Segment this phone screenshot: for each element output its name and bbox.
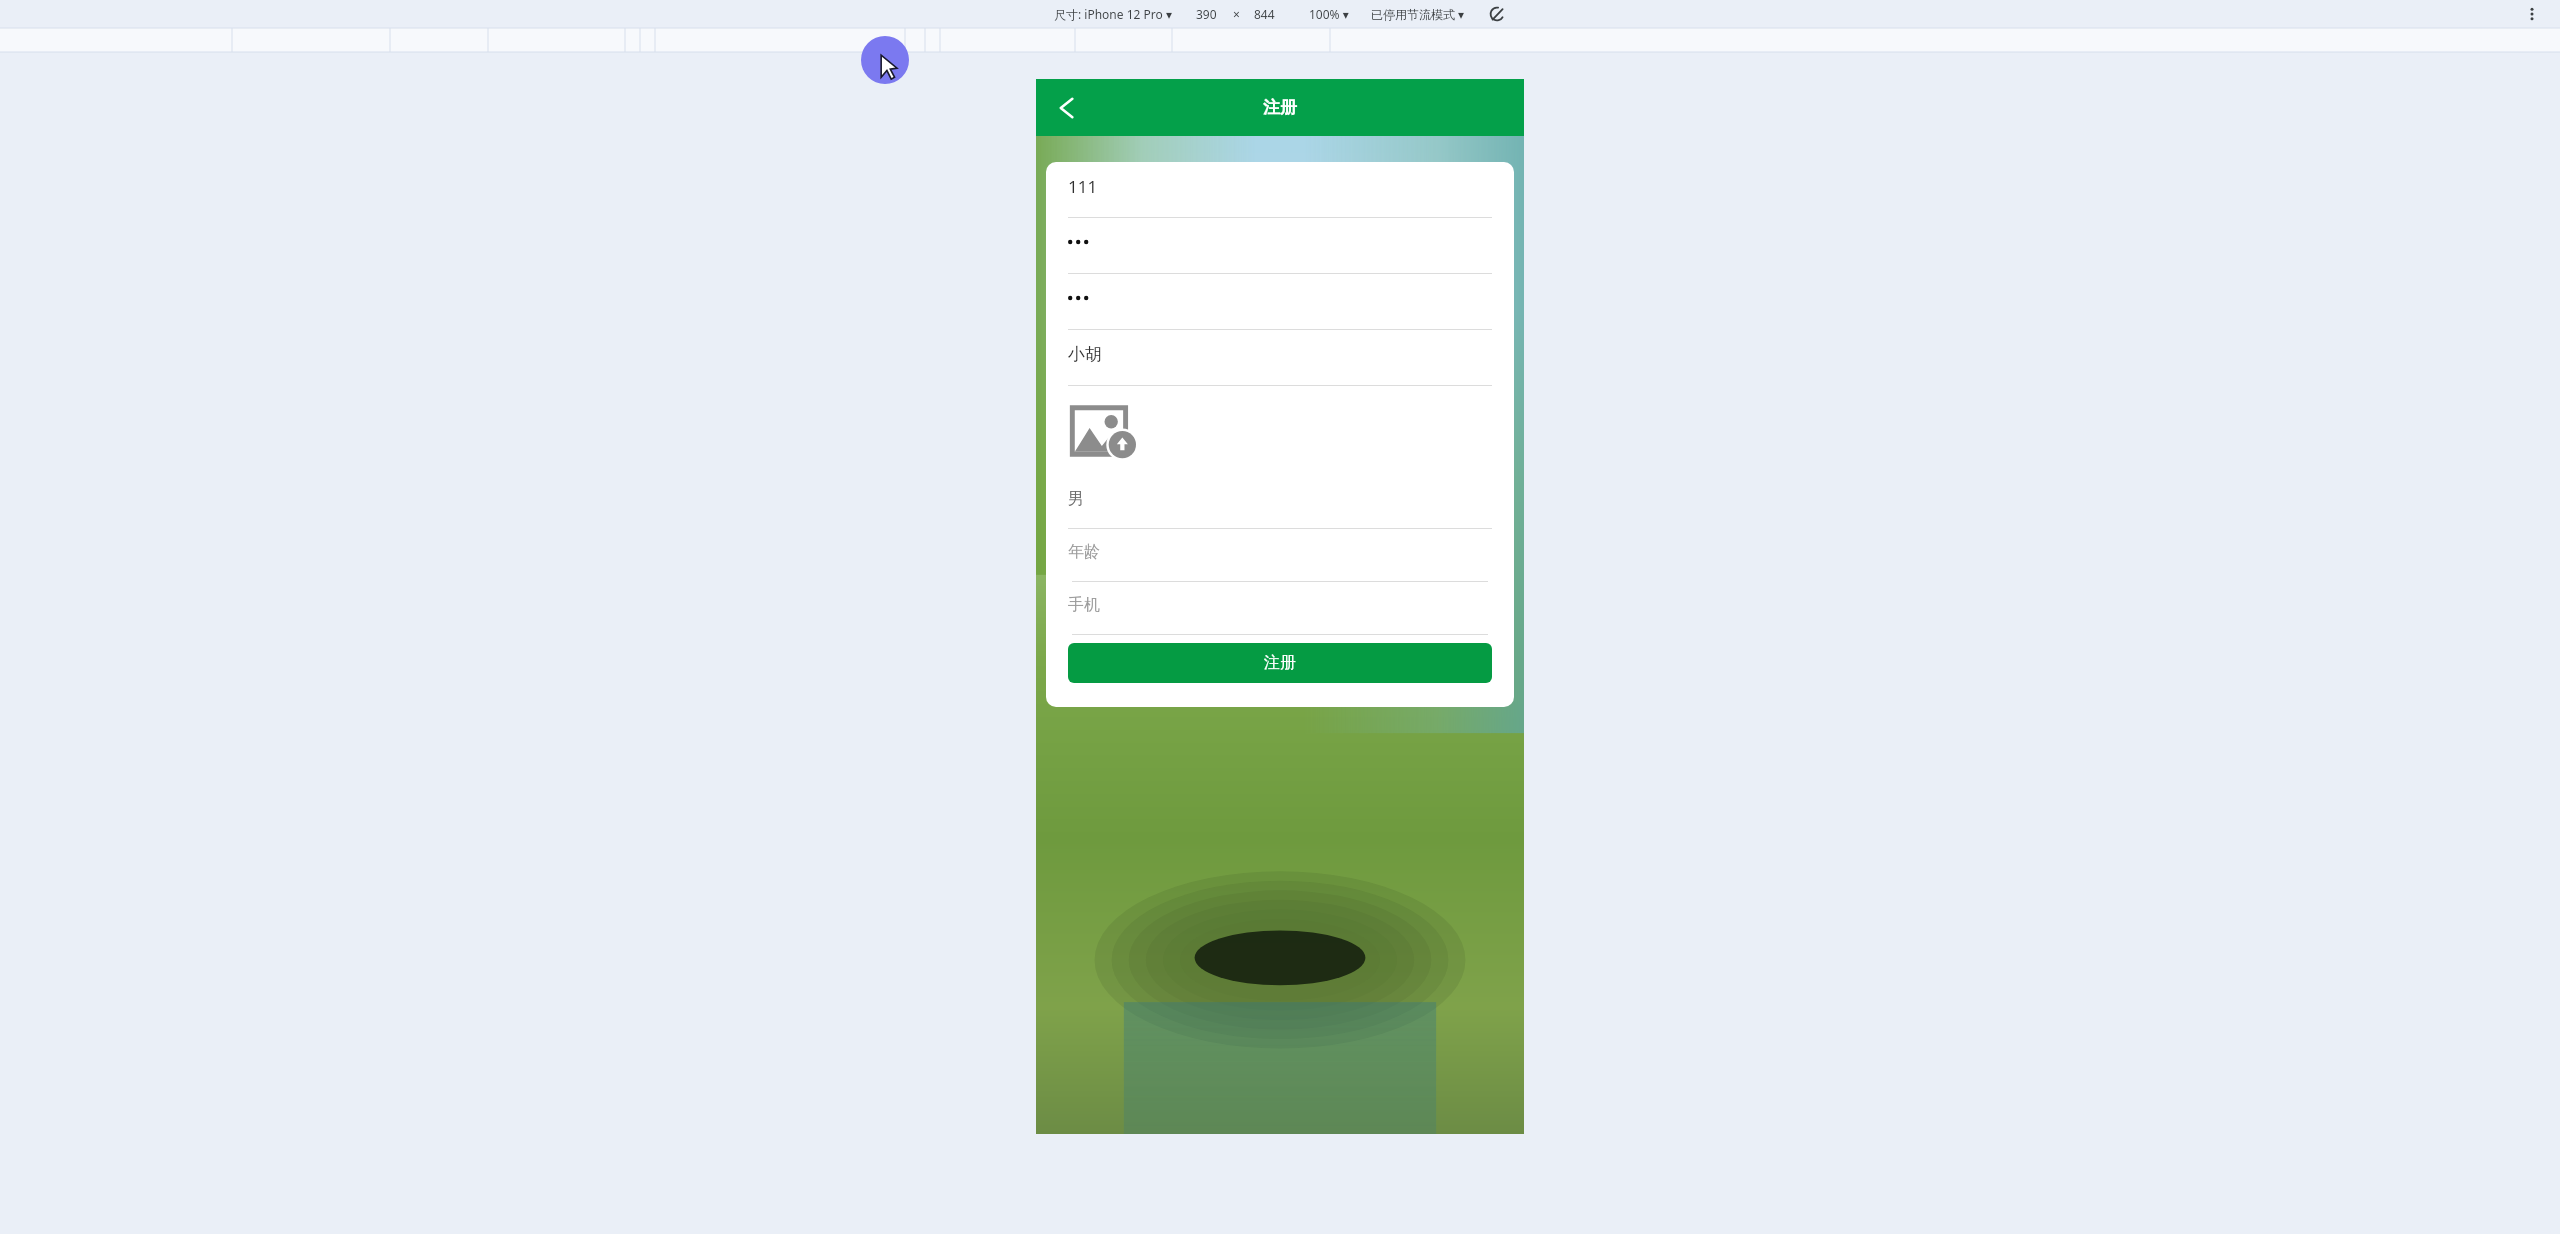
button[interactable]: Upload image: [1068, 402, 1140, 460]
staticText: 注册: [1263, 97, 1297, 118]
button[interactable]: 男: [1068, 476, 1492, 529]
staticText: 注册: [1264, 653, 1296, 673]
staticText: ×: [1233, 6, 1240, 22]
staticText: 男: [1068, 489, 1084, 509]
button[interactable]: More options: [2522, 4, 2542, 24]
button[interactable]: Back: [1042, 86, 1086, 130]
staticText: 844: [1254, 6, 1275, 22]
button[interactable]: 111: [1068, 162, 1492, 218]
button[interactable]: [1068, 274, 1492, 330]
button[interactable]: 年龄: [1068, 529, 1492, 582]
staticText: 小胡: [1068, 344, 1102, 365]
button[interactable]: 注册: [1068, 643, 1492, 683]
staticText: 111: [1068, 175, 1098, 198]
staticText: 100% ▾: [1309, 6, 1349, 22]
staticText: 尺寸: iPhone 12 Pro ▾: [1054, 6, 1172, 22]
button[interactable]: [1068, 218, 1492, 274]
staticText: 手机: [1068, 595, 1100, 615]
staticText: 已停用节流模式 ▾: [1371, 6, 1465, 22]
staticText: 390: [1196, 6, 1217, 22]
button[interactable]: 小胡: [1068, 330, 1492, 386]
button[interactable]: 手机: [1068, 582, 1492, 635]
staticText: 年龄: [1068, 542, 1100, 562]
other: Rotate: [1487, 4, 1507, 24]
